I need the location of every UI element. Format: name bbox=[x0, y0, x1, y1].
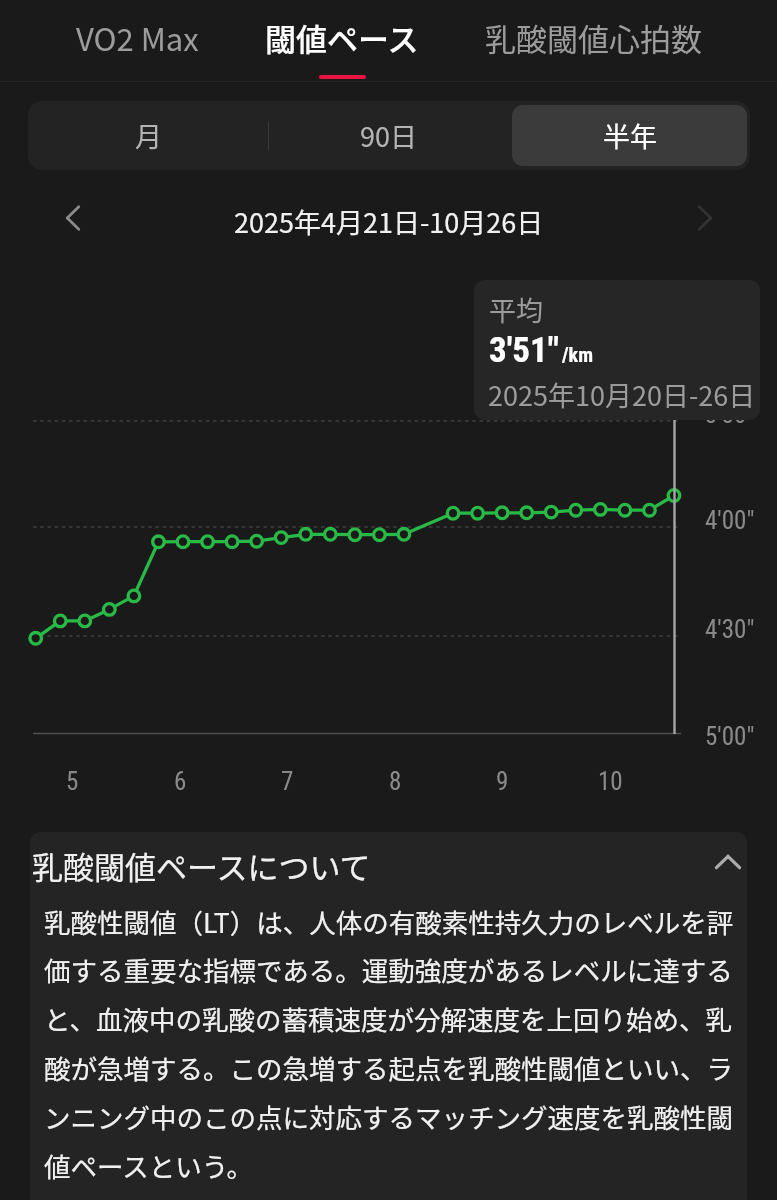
staticText: 閾値ペース bbox=[265, 15, 419, 60]
staticText: 乳酸閾値心拍数 bbox=[485, 15, 702, 60]
staticText: 6 bbox=[174, 767, 187, 796]
staticText: 4'00" bbox=[705, 506, 755, 535]
staticText: 4'30" bbox=[705, 615, 755, 644]
staticText: 10 bbox=[598, 767, 623, 796]
button[interactable]: 90日 bbox=[271, 105, 506, 166]
staticText: 5 bbox=[66, 767, 79, 796]
staticText: /km bbox=[562, 343, 594, 366]
button[interactable]: VO2 Max bbox=[43, 0, 232, 81]
button[interactable]: 次の期間 bbox=[683, 196, 727, 240]
staticText: 月 bbox=[135, 116, 162, 155]
staticText: 2025年10月20日-26日 bbox=[488, 375, 756, 414]
staticText: VO2 Max bbox=[76, 15, 199, 60]
staticText: 7 bbox=[281, 767, 294, 796]
staticText: 90日 bbox=[360, 116, 417, 155]
staticText: 5'00" bbox=[705, 722, 755, 751]
staticText: 2025年4月21日-10月26日 bbox=[234, 202, 544, 241]
button[interactable]: 閾値ペース bbox=[232, 0, 452, 81]
staticText: 3'51" bbox=[489, 330, 559, 371]
staticText: 乳酸閾値ペースについて bbox=[32, 843, 371, 888]
button[interactable]: 平均 bbox=[474, 280, 760, 420]
button[interactable]: 半年 bbox=[512, 105, 747, 166]
button[interactable]: 前の期間 bbox=[51, 196, 95, 240]
staticText: 乳酸性閾値（LT）は、人体の有酸素性持久力のレベルを評価する重要な指標である。運… bbox=[44, 902, 744, 1185]
staticText: 半年 bbox=[603, 116, 657, 155]
staticText: 8 bbox=[389, 767, 402, 796]
button[interactable]: 月 bbox=[31, 105, 265, 166]
staticText: 平均 bbox=[489, 290, 543, 329]
button[interactable]: 乳酸閾値心拍数 bbox=[452, 0, 735, 81]
button[interactable]: 折りたたむ bbox=[706, 840, 747, 884]
staticText: 9 bbox=[496, 767, 509, 796]
staticText: 3'30" bbox=[705, 400, 755, 429]
